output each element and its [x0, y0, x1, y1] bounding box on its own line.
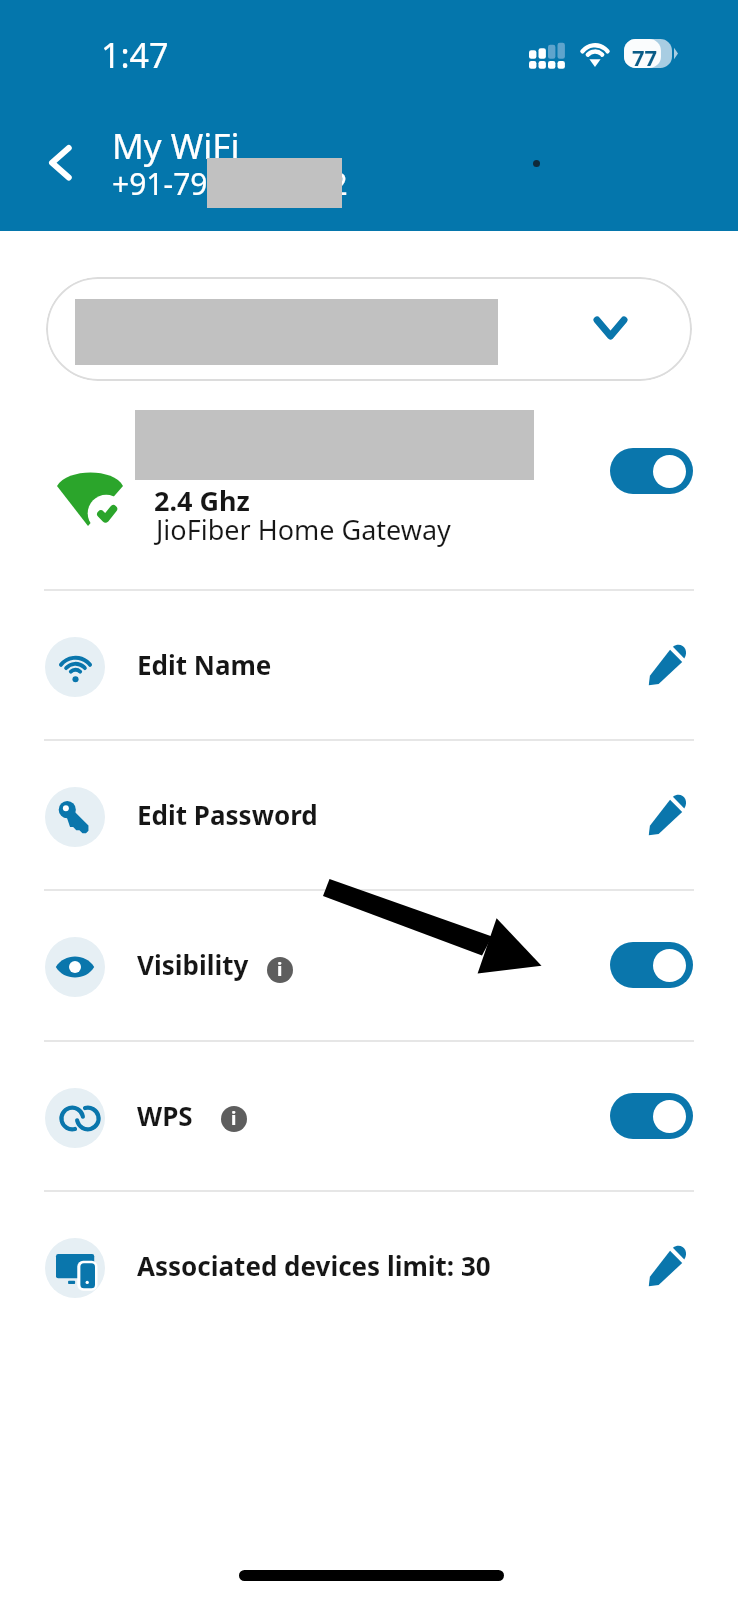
- staticText: Associated devices limit: 30: [137, 1248, 491, 1283]
- staticText: Edit Name: [137, 647, 272, 682]
- button[interactable]: Edit: [648, 796, 686, 834]
- staticText: 77: [632, 42, 658, 71]
- staticText: i: [277, 957, 283, 982]
- button[interactable]: Toggle: [610, 1093, 693, 1139]
- button[interactable]: Edit: [648, 1247, 686, 1285]
- button[interactable]: [46, 277, 692, 381]
- staticText: JioFiber Home Gateway: [156, 511, 451, 548]
- button[interactable]: Edit: [648, 646, 686, 684]
- button[interactable]: Edit Name: [0, 590, 738, 740]
- button[interactable]: Edit Password: [0, 740, 738, 890]
- staticText: +91-79XXXXXXX2: [112, 163, 348, 204]
- button[interactable]: Visibility: [0, 890, 738, 1040]
- staticText: Edit Password: [137, 797, 318, 832]
- button[interactable]: Info: [267, 957, 293, 983]
- staticText: My WiFi: [112, 122, 240, 170]
- button[interactable]: Associated devices limit: 30: [0, 1191, 738, 1341]
- button[interactable]: Toggle: [610, 942, 693, 988]
- staticText: Visibility: [137, 947, 249, 982]
- staticText: 2.4 Ghz: [154, 482, 250, 519]
- button[interactable]: Back: [30, 131, 92, 194]
- staticText: WPS: [137, 1098, 193, 1133]
- button[interactable]: Info: [221, 1106, 247, 1132]
- button[interactable]: 2.4 Ghz: [0, 400, 738, 585]
- button[interactable]: WPS: [0, 1041, 738, 1191]
- staticText: i: [231, 1106, 237, 1131]
- button[interactable]: Toggle: [610, 448, 693, 494]
- staticText: 1:47: [101, 32, 169, 78]
